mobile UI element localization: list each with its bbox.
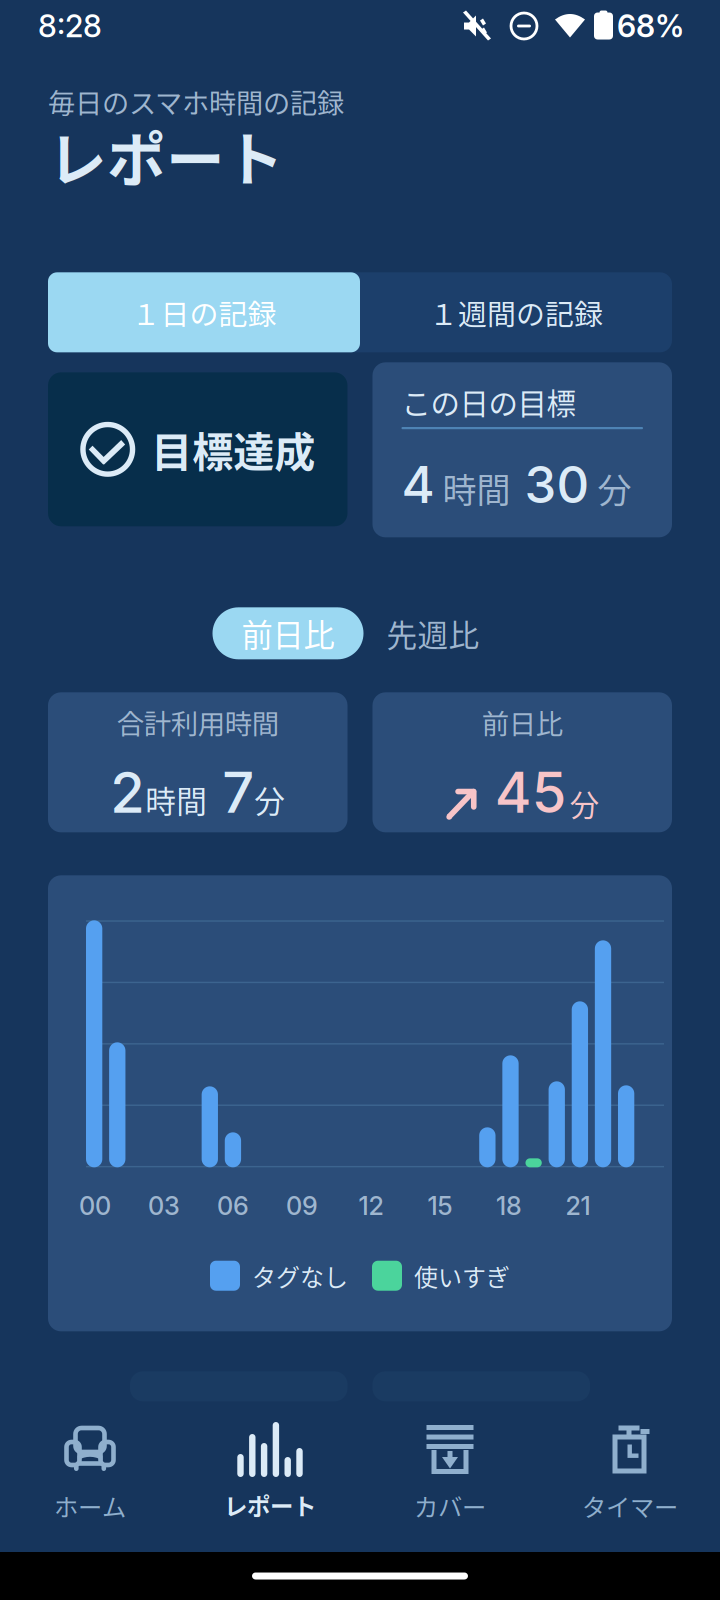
staticText: 06 <box>217 1190 249 1221</box>
staticText: 前日比 <box>241 611 334 656</box>
staticText: 前日比 <box>482 702 563 742</box>
staticText: 30 <box>510 454 589 515</box>
button[interactable]: 前日比 <box>212 607 363 659</box>
staticText: 分 <box>254 777 285 822</box>
staticText: 先週比 <box>386 611 479 655</box>
staticText: 分 <box>589 464 631 513</box>
staticText: 8:28 <box>38 7 102 44</box>
staticText: 時間 <box>145 777 207 822</box>
button[interactable]: １週間の記録 <box>360 272 672 352</box>
button[interactable]: カバー <box>360 1422 540 1534</box>
staticText: 09 <box>286 1190 318 1221</box>
staticText: １週間の記録 <box>429 291 603 333</box>
button[interactable]: ホーム <box>0 1422 180 1534</box>
staticText: 45 <box>495 759 567 826</box>
staticText: 18 <box>496 1190 522 1221</box>
staticText: 合計利用時間 <box>117 702 279 742</box>
staticText: 毎日のスマホ時間の記録 <box>48 82 344 121</box>
staticText: 7 <box>207 759 254 826</box>
staticText: 68% <box>617 7 684 44</box>
staticText: 目標達成 <box>151 420 315 479</box>
button[interactable]: 先週比 <box>378 607 487 659</box>
staticText: 使いすぎ <box>414 1258 510 1293</box>
staticText: 21 <box>565 1190 590 1221</box>
button[interactable]: タイマー <box>540 1422 720 1534</box>
staticText: 15 <box>427 1190 452 1221</box>
staticText: 12 <box>358 1190 383 1221</box>
button[interactable]: レポート <box>180 1422 360 1534</box>
staticText: この日の目標 <box>401 380 575 423</box>
staticText: ホーム <box>54 1488 126 1523</box>
staticText: 分 <box>570 782 599 824</box>
button[interactable]: １日の記録 <box>48 272 360 352</box>
staticText: レポート <box>48 113 284 198</box>
staticText: レポート <box>224 1488 316 1522</box>
staticText: 00 <box>79 1190 111 1221</box>
staticText: 時間 <box>434 464 510 513</box>
staticText: 2 <box>110 759 145 826</box>
staticText: カバー <box>414 1488 486 1523</box>
staticText: １日の記録 <box>131 291 276 333</box>
staticText: タグなし <box>252 1258 348 1293</box>
staticText: タイマー <box>582 1488 678 1523</box>
staticText: 4 <box>401 454 434 515</box>
staticText: 03 <box>148 1190 180 1221</box>
